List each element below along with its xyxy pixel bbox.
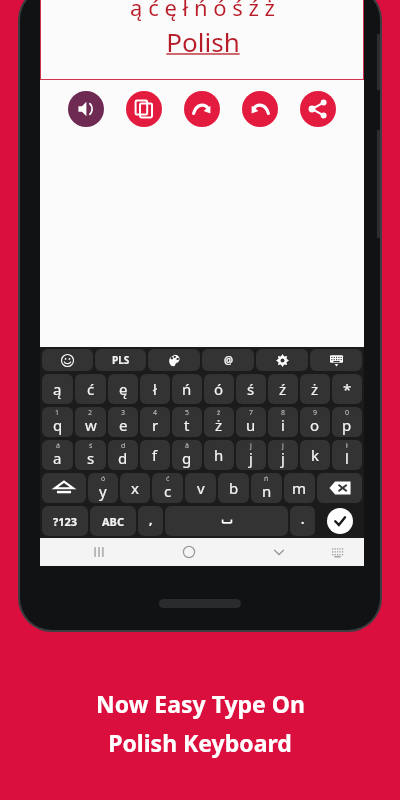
button[interactable]: * bbox=[332, 374, 362, 404]
staticText: 9 bbox=[313, 408, 318, 418]
staticText: ą ć ę ł ń ó ś ź ż bbox=[130, 0, 275, 22]
staticText: Polish bbox=[166, 24, 240, 59]
staticText: j bbox=[249, 448, 253, 468]
staticText: f bbox=[152, 445, 158, 465]
button[interactable]: Emoji bbox=[42, 349, 93, 371]
staticText: s bbox=[87, 448, 95, 468]
staticText: Now Easy Type On bbox=[96, 688, 305, 719]
staticText: v bbox=[197, 478, 205, 498]
staticText: ń bbox=[264, 474, 269, 484]
button[interactable]: Enter bbox=[317, 506, 362, 536]
button[interactable]: j bbox=[236, 440, 266, 470]
staticText: j bbox=[250, 441, 252, 451]
button[interactable]: Switch keyboard bbox=[324, 538, 350, 566]
staticText: 1 bbox=[55, 408, 60, 418]
staticText: p bbox=[342, 415, 352, 435]
button[interactable]: ó bbox=[88, 473, 118, 503]
button[interactable]: Redo bbox=[184, 91, 220, 127]
button[interactable]: 1 bbox=[42, 407, 73, 437]
staticText: d bbox=[121, 441, 126, 451]
staticText: i bbox=[281, 415, 285, 435]
button[interactable]: ą bbox=[42, 374, 73, 404]
button[interactable]: ł bbox=[332, 440, 362, 470]
button[interactable]: Recents bbox=[54, 538, 144, 566]
button[interactable]: , bbox=[138, 506, 163, 536]
button[interactable]: Share bbox=[300, 91, 336, 127]
button[interactable]: ć bbox=[75, 374, 106, 404]
button[interactable]: Shift bbox=[42, 473, 86, 503]
staticText: g bbox=[182, 448, 192, 468]
button[interactable]: ś bbox=[75, 440, 106, 470]
button[interactable]: ABC bbox=[90, 506, 136, 536]
button[interactable]: 3 bbox=[108, 407, 138, 437]
button[interactable]: . bbox=[290, 506, 315, 536]
button[interactable]: 5 bbox=[172, 407, 202, 437]
staticText: h bbox=[214, 445, 224, 465]
staticText: ž bbox=[217, 408, 221, 418]
staticText: * bbox=[343, 379, 352, 399]
button[interactable]: f bbox=[140, 440, 170, 470]
button[interactable]: ę bbox=[108, 374, 138, 404]
button[interactable]: ǎ bbox=[172, 440, 202, 470]
button[interactable]: ń bbox=[172, 374, 202, 404]
button[interactable]: PLS bbox=[95, 349, 146, 371]
staticText: ABC bbox=[102, 514, 124, 529]
staticText: t bbox=[184, 415, 190, 435]
button[interactable]: 7 bbox=[236, 407, 266, 437]
staticText: n bbox=[262, 481, 272, 501]
button[interactable]: 2 bbox=[75, 407, 106, 437]
staticText: ń bbox=[182, 379, 192, 399]
staticText: y bbox=[99, 481, 107, 501]
button[interactable]: ć bbox=[152, 473, 183, 503]
button[interactable]: Home bbox=[144, 538, 234, 566]
button[interactable]: k bbox=[300, 440, 330, 470]
button[interactable]: á bbox=[42, 440, 73, 470]
button[interactable]: 0 bbox=[332, 407, 362, 437]
button[interactable]: ń bbox=[251, 473, 282, 503]
button[interactable]: ż bbox=[300, 374, 330, 404]
button[interactable]: h bbox=[204, 440, 234, 470]
button[interactable]: v bbox=[185, 473, 216, 503]
button[interactable]: b bbox=[218, 473, 249, 503]
button[interactable]: Space bbox=[165, 506, 288, 536]
button[interactable]: ł bbox=[140, 374, 170, 404]
staticText: ś bbox=[247, 379, 255, 399]
button[interactable]: d bbox=[108, 440, 138, 470]
staticText: PLS bbox=[112, 353, 130, 367]
staticText: 0 bbox=[345, 408, 350, 418]
button[interactable]: j bbox=[268, 440, 298, 470]
button[interactable]: Undo bbox=[242, 91, 278, 127]
button[interactable]: Backspace bbox=[317, 473, 362, 503]
button[interactable]: Copy bbox=[126, 91, 162, 127]
button[interactable]: x bbox=[120, 473, 150, 503]
button[interactable]: ś bbox=[236, 374, 266, 404]
staticText: ć bbox=[166, 474, 170, 484]
staticText: ł bbox=[153, 379, 157, 399]
staticText: x bbox=[131, 478, 139, 498]
staticText: ź bbox=[279, 379, 287, 399]
staticText: ż bbox=[311, 379, 319, 399]
button[interactable]: m bbox=[284, 473, 315, 503]
button[interactable]: Settings bbox=[256, 349, 308, 371]
button[interactable]: Hide keyboard bbox=[310, 349, 362, 371]
staticText: 8 bbox=[281, 408, 286, 418]
button[interactable]: ?123 bbox=[42, 506, 88, 536]
staticText: 2 bbox=[88, 408, 93, 418]
staticText: b bbox=[229, 478, 239, 498]
staticText: u bbox=[246, 415, 256, 435]
button[interactable]: ó bbox=[204, 374, 234, 404]
staticText: ó bbox=[214, 379, 224, 399]
button[interactable]: Theme bbox=[148, 349, 200, 371]
button[interactable]: @ bbox=[202, 349, 254, 371]
staticText: w bbox=[85, 415, 97, 435]
button[interactable]: ž bbox=[204, 407, 234, 437]
staticText: ę bbox=[119, 379, 128, 399]
button[interactable]: ź bbox=[268, 374, 298, 404]
button[interactable]: Speak bbox=[68, 91, 104, 127]
button[interactable]: 4 bbox=[140, 407, 170, 437]
button[interactable]: Back bbox=[234, 538, 324, 566]
staticText: ą bbox=[53, 379, 62, 399]
button[interactable]: ą ć ę ł ń ó ś ź ż bbox=[40, 0, 364, 80]
button[interactable]: 8 bbox=[268, 407, 298, 437]
button[interactable]: 9 bbox=[300, 407, 330, 437]
